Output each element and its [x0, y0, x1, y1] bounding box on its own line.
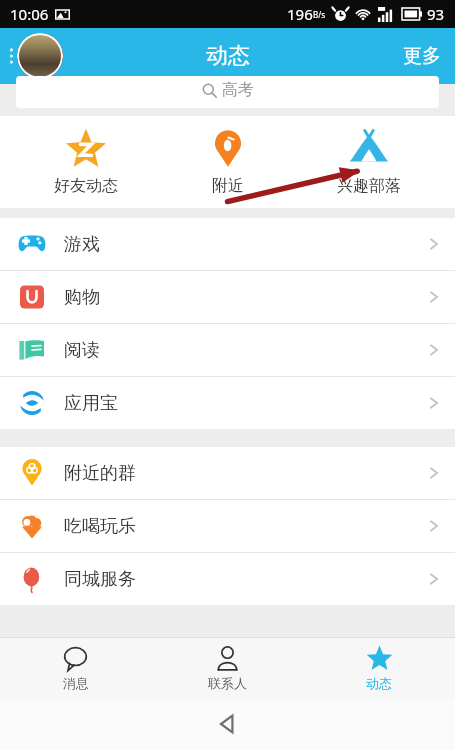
- staticText: 应用宝: [64, 392, 118, 415]
- button[interactable]: 应用宝: [0, 377, 455, 429]
- staticText: 高考: [222, 80, 254, 100]
- button[interactable]: 更多: [389, 28, 455, 84]
- button[interactable]: 联系人: [151, 638, 303, 698]
- button[interactable]: 附近: [173, 124, 283, 200]
- staticText: 消息: [63, 675, 89, 691]
- staticText: 吃喝玩乐: [64, 515, 136, 538]
- button[interactable]: 游戏: [0, 218, 455, 271]
- staticText: 196: [287, 4, 313, 24]
- staticText: 兴趣部落: [337, 176, 401, 196]
- staticText: 93: [427, 4, 445, 24]
- button[interactable]: 兴趣部落: [314, 124, 424, 200]
- button[interactable]: 好友动态: [31, 124, 141, 200]
- staticText: 联系人: [208, 675, 247, 691]
- staticText: 购物: [64, 286, 100, 309]
- staticText: 动态: [366, 675, 392, 691]
- staticText: 附近的群: [64, 462, 136, 485]
- staticText: 动态: [206, 42, 250, 70]
- staticText: 同城服务: [64, 568, 136, 591]
- staticText: 10:06: [10, 4, 49, 24]
- button[interactable]: 同城服务: [0, 553, 455, 605]
- button[interactable]: 购物: [0, 271, 455, 324]
- staticText: 游戏: [64, 233, 100, 256]
- button[interactable]: 附近的群: [0, 447, 455, 500]
- button[interactable]: Back: [208, 704, 248, 744]
- button[interactable]: 高考: [16, 76, 439, 108]
- button[interactable]: 阅读: [0, 324, 455, 377]
- staticText: 更多: [403, 44, 441, 68]
- button[interactable]: 动态: [303, 638, 455, 698]
- staticText: 附近: [212, 176, 244, 196]
- button[interactable]: 吃喝玩乐: [0, 500, 455, 553]
- button[interactable]: Profile avatar: [17, 33, 63, 79]
- staticText: 好友动态: [54, 176, 118, 196]
- staticText: 阅读: [64, 339, 100, 362]
- staticText: B/s: [313, 9, 326, 20]
- button[interactable]: 消息: [0, 638, 151, 698]
